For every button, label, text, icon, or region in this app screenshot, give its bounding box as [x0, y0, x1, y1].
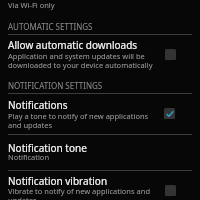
staticText: Notifications	[8, 98, 68, 112]
button[interactable]: Enabled checkbox	[164, 108, 175, 119]
button[interactable]: Notification vibration	[0, 172, 200, 200]
staticText: Notification tone	[8, 141, 87, 155]
button[interactable]: Notifications	[0, 95, 200, 134]
staticText: Vibrate to notify of new applications an…	[8, 186, 151, 200]
button[interactable]: Via Wi-Fi only	[0, 0, 200, 16]
staticText: Play a tone to notify of new application…	[8, 111, 149, 130]
button[interactable]: Allow automatic downloads	[0, 36, 200, 72]
button[interactable]: Disabled checkbox	[165, 185, 176, 196]
staticText: Notification vibration	[8, 174, 108, 188]
staticText: Allow automatic downloads	[8, 38, 138, 52]
button[interactable]: Disabled checkbox	[165, 49, 176, 60]
staticText: Application and system updates will be d…	[8, 51, 153, 70]
staticText: AUTOMATIC SETTINGS	[8, 21, 93, 32]
button[interactable]: Notification tone	[0, 136, 200, 170]
staticText: Via Wi-Fi only	[8, 0, 55, 10]
staticText: NOTIFICATION SETTINGS	[8, 80, 103, 91]
staticText: Notification	[8, 152, 50, 162]
